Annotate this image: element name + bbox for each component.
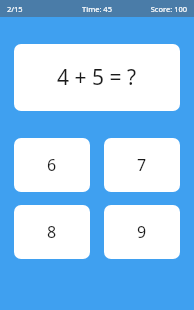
staticText: 8 — [47, 221, 57, 243]
staticText: 9 — [137, 221, 147, 243]
button[interactable]: 9 — [104, 205, 180, 259]
staticText: 4 + 5 = ? — [57, 63, 137, 92]
button[interactable]: 7 — [104, 138, 180, 192]
staticText: 2/15 — [7, 4, 67, 14]
staticText: Score: 100 — [127, 4, 187, 14]
staticText: 6 — [47, 154, 57, 176]
staticText: Time: 45 — [67, 4, 127, 14]
staticText: 7 — [137, 154, 147, 176]
button[interactable]: 6 — [14, 138, 90, 192]
button[interactable]: 4 + 5 = ? — [14, 44, 180, 111]
button[interactable]: 8 — [14, 205, 90, 259]
